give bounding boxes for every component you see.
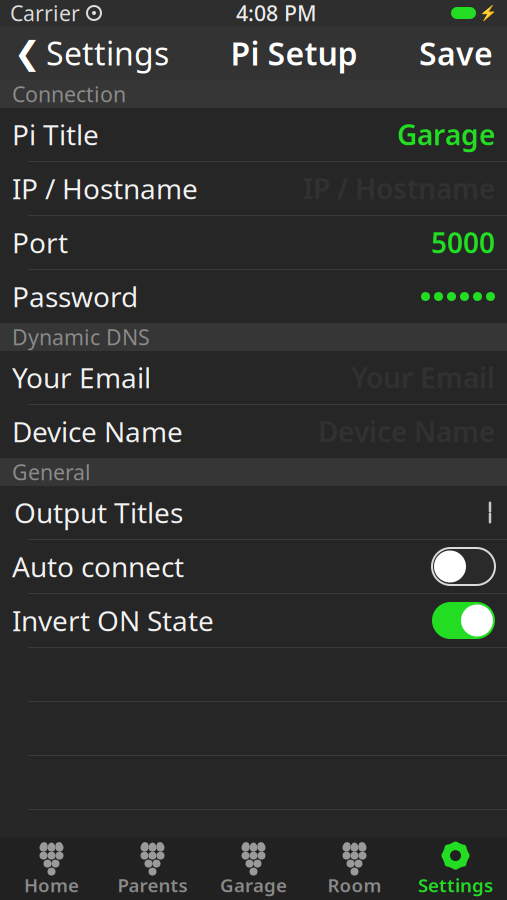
button[interactable]: Output Titles (0, 486, 507, 539)
staticText: Invert ON State (12, 602, 214, 639)
button[interactable]: Your Email (0, 351, 507, 404)
button[interactable]: ❮ (0, 26, 169, 80)
button[interactable]: Port (0, 216, 507, 269)
staticText: Port (12, 224, 68, 261)
staticText: Dynamic DNS (12, 323, 150, 351)
staticText: Garage (397, 116, 495, 153)
button[interactable]: Settings (405, 838, 506, 900)
staticText: Connection (12, 80, 126, 108)
staticText: Settings (418, 873, 493, 897)
button[interactable]: Room (304, 838, 405, 900)
button[interactable]: Save (419, 26, 507, 80)
button[interactable]: Invert ON State (0, 594, 507, 647)
staticText: ⚡ (479, 5, 497, 21)
staticText: Settings (46, 32, 169, 74)
staticText: Output Titles (14, 494, 183, 531)
staticText: Device Name (318, 413, 495, 450)
staticText: Garage (220, 873, 287, 897)
button[interactable]: Auto connect (0, 540, 507, 593)
staticText: Parents (117, 873, 187, 897)
staticText: ❮ (14, 35, 41, 71)
staticText: Your Email (12, 359, 151, 396)
button[interactable]: Device Name (0, 405, 507, 458)
staticText: Password (12, 278, 138, 315)
staticText: Pi Setup (230, 32, 357, 74)
button[interactable]: Password (0, 270, 507, 323)
staticText: General (12, 458, 91, 486)
staticText: Home (24, 873, 79, 897)
staticText: Pi Title (12, 116, 99, 153)
staticText: Auto connect (12, 548, 184, 585)
staticText: Carrier (10, 0, 80, 27)
button[interactable]: Garage (203, 838, 304, 900)
staticText: 4:08 PM (236, 0, 317, 27)
staticText: IP / Hostname (303, 170, 495, 207)
staticText: Device Name (12, 413, 183, 450)
staticText: Room (327, 873, 381, 897)
button[interactable]: Home (1, 838, 102, 900)
staticText: 5000 (431, 224, 495, 261)
staticText: Save (419, 32, 493, 74)
staticText: Your Email (351, 359, 495, 396)
staticText: IP / Hostname (12, 170, 198, 207)
button[interactable]: Pi Title (0, 108, 507, 161)
button[interactable]: Parents (102, 838, 203, 900)
button[interactable]: IP / Hostname (0, 162, 507, 215)
